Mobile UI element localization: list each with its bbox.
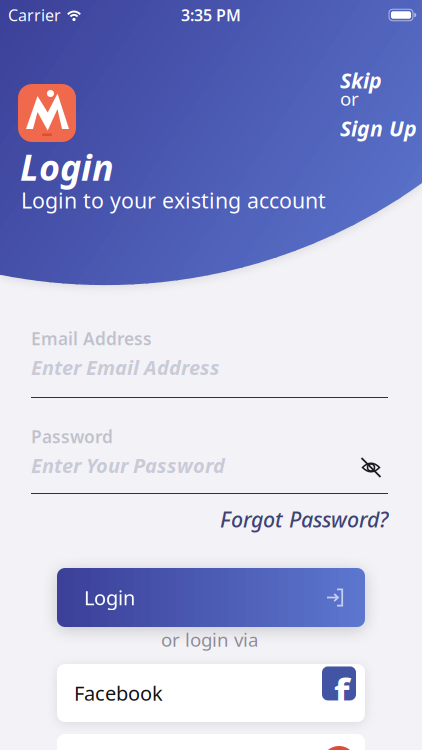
staticText: Carrier — [8, 4, 61, 26]
staticText: Forgot Password? — [220, 505, 388, 533]
staticText: Skip — [340, 66, 382, 94]
staticText: Login — [84, 584, 135, 611]
staticText: or login via — [161, 627, 258, 652]
staticText: Enter Your Password — [31, 452, 225, 479]
staticText: or — [340, 86, 359, 111]
button[interactable]: Sign Up — [340, 114, 417, 142]
staticText: Login — [20, 143, 114, 191]
button[interactable]: Skip — [340, 66, 382, 94]
staticText: Login to your existing account — [21, 186, 326, 214]
staticText: Email Address — [31, 327, 152, 350]
button[interactable]: Google — [57, 734, 365, 750]
staticText: Enter Email Address — [31, 354, 220, 381]
button[interactable]: Facebook — [57, 664, 365, 722]
button[interactable]: Login — [57, 568, 365, 627]
button[interactable]: Show password — [361, 458, 381, 477]
staticText: f — [334, 665, 349, 718]
staticText: Facebook — [74, 680, 163, 706]
staticText: Sign Up — [340, 114, 417, 142]
staticText: Password — [31, 425, 113, 448]
button[interactable]: Forgot Password? — [220, 505, 388, 533]
staticText: 3:35 PM — [181, 4, 241, 26]
